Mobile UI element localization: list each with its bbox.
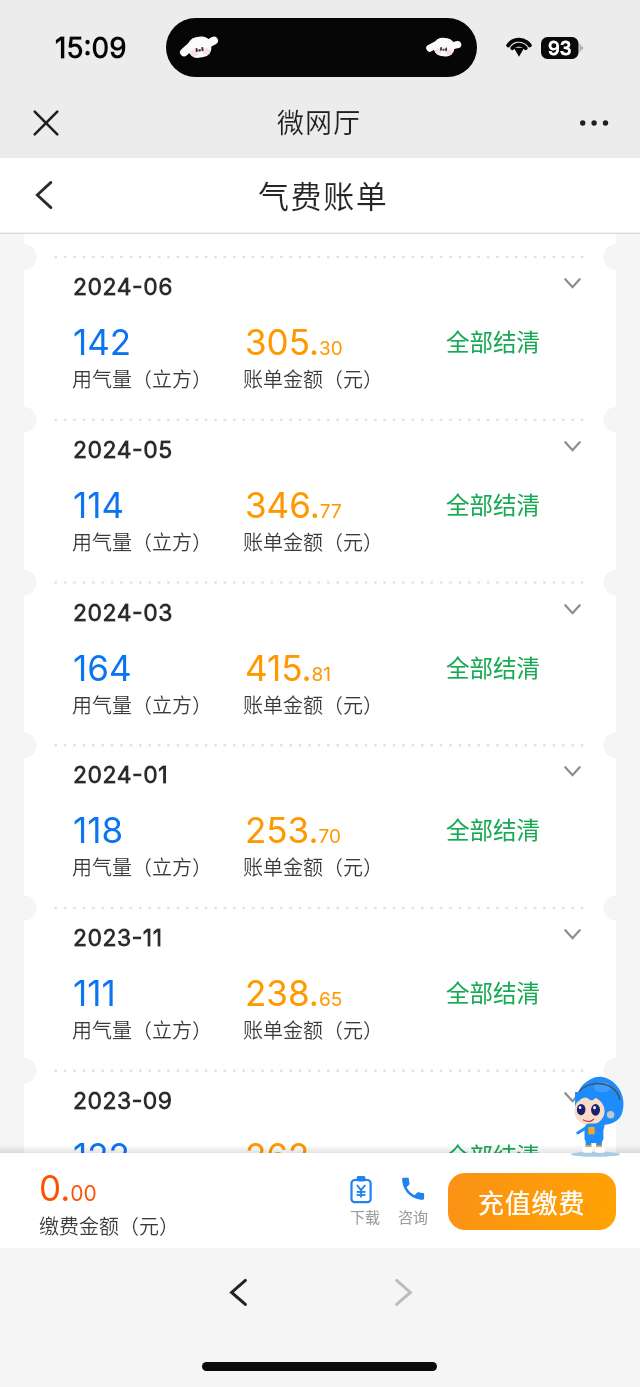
staticText: 咨询	[398, 1206, 429, 1228]
staticText: 用气量（立方）	[72, 690, 212, 719]
staticText: 262.50	[245, 1135, 344, 1153]
staticText: 2023-09	[73, 1087, 173, 1115]
staticText: 111	[73, 972, 116, 1014]
button[interactable]: 2024-06	[24, 257, 616, 420]
button[interactable]: Customer service assistant	[560, 1070, 632, 1165]
staticText: 0.00	[39, 1167, 97, 1209]
staticText: 142	[73, 321, 132, 363]
staticText: 253.70	[245, 809, 341, 851]
button[interactable]: 2023-11	[24, 908, 616, 1071]
staticText: 122	[73, 1135, 130, 1153]
staticText: 账单金额（元）	[243, 852, 383, 881]
staticText: 气费账单	[258, 172, 389, 217]
staticText: 全部结清	[446, 975, 540, 1009]
button[interactable]: Back	[214, 1270, 262, 1318]
staticText: 用气量（立方）	[72, 364, 212, 393]
button[interactable]: 下载	[338, 1169, 388, 1231]
button[interactable]: 充值缴费	[448, 1173, 616, 1230]
staticText: 15:09	[55, 31, 127, 65]
staticText: 346.77	[245, 484, 342, 526]
button[interactable]: 2024-05	[24, 420, 616, 583]
button[interactable]: Close	[22, 99, 70, 147]
button[interactable]: More options	[570, 99, 618, 147]
staticText: 缴费金额（元）	[39, 1211, 179, 1240]
staticText: 用气量（立方）	[72, 527, 212, 556]
staticText: 用气量（立方）	[72, 852, 212, 881]
staticText: 305.30	[245, 321, 343, 363]
staticText: 93	[548, 37, 572, 60]
staticText: 用气量（立方）	[72, 1015, 212, 1044]
staticText: 114	[73, 484, 125, 526]
button[interactable]: Forward	[380, 1270, 428, 1318]
staticText: 全部结清	[446, 650, 540, 684]
button[interactable]: 2024-01	[24, 745, 616, 908]
staticText: 118	[73, 809, 124, 851]
staticText: 164	[73, 647, 132, 689]
staticText: 微网厅	[277, 102, 362, 141]
staticText: 2024-01	[73, 761, 169, 789]
staticText: 2024-06	[73, 273, 173, 301]
button[interactable]: 2023-09	[24, 1071, 616, 1153]
staticText: 账单金额（元）	[243, 690, 383, 719]
staticText: 充值缴费	[478, 1183, 586, 1221]
button[interactable]: 咨询	[388, 1169, 438, 1231]
staticText: 2024-03	[73, 599, 173, 627]
staticText: 账单金额（元）	[243, 1015, 383, 1044]
staticText: 账单金额（元）	[243, 364, 383, 393]
staticText: 全部结清	[446, 812, 540, 846]
staticText: 全部结清	[446, 487, 540, 521]
staticText: 2024-05	[73, 436, 173, 464]
staticText: 下载	[350, 1206, 381, 1228]
staticText: 415.81	[245, 647, 332, 689]
staticText: 2023-11	[73, 924, 163, 952]
button[interactable]: 2024-03	[24, 583, 616, 746]
staticText: 全部结清	[446, 1138, 540, 1153]
button[interactable]: Back	[20, 171, 68, 219]
staticText: 账单金额（元）	[243, 527, 383, 556]
staticText: 全部结清	[446, 324, 540, 358]
staticText: 238.65	[245, 972, 343, 1014]
